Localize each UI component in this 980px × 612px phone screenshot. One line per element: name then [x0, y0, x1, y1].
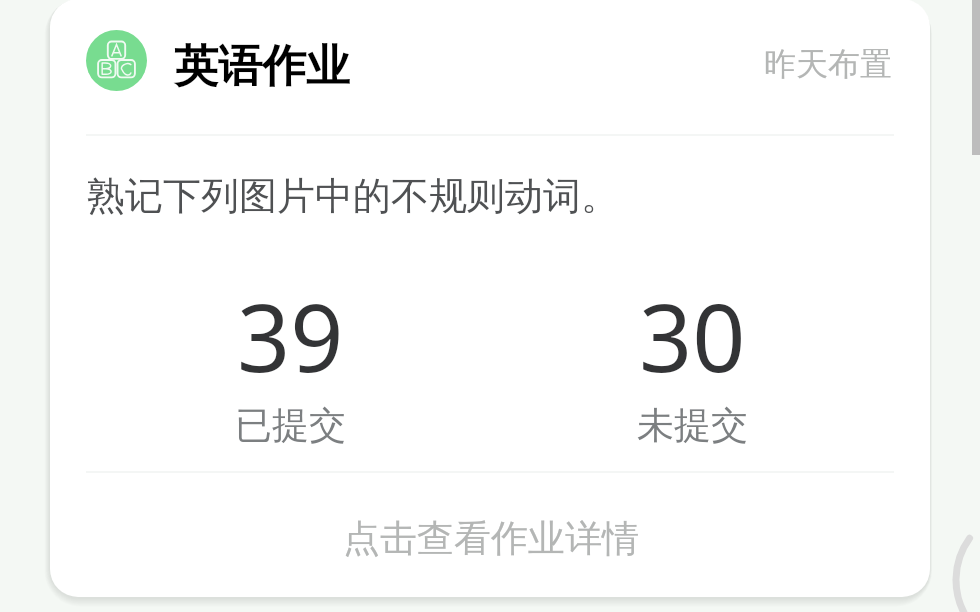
- staticText: 已提交: [235, 402, 346, 449]
- button[interactable]: 30: [491, 273, 894, 447]
- other: 英语作业: [86, 30, 147, 91]
- staticText: 昨天布置: [764, 44, 892, 84]
- button[interactable]: [51, 0, 930, 597]
- button[interactable]: 39: [89, 273, 491, 447]
- staticText: 点击查看作业详情: [343, 515, 639, 562]
- staticText: 39: [237, 273, 344, 400]
- button[interactable]: 点击查看作业详情: [51, 473, 930, 597]
- staticText: 熟记下列图片中的不规则动词。: [87, 172, 619, 220]
- staticText: 30: [639, 273, 746, 400]
- staticText: 英语作业: [174, 39, 350, 94]
- staticText: 未提交: [637, 402, 748, 449]
